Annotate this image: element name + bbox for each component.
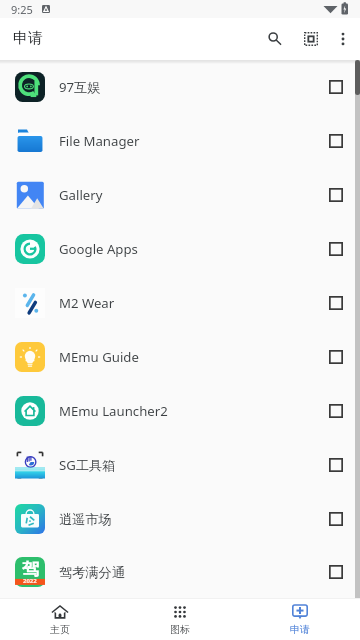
button[interactable]: 图标	[120, 599, 240, 640]
button[interactable]: Select MEmu Guide	[325, 346, 347, 368]
button[interactable]: Select all	[292, 22, 326, 56]
staticText: 申请	[13, 29, 43, 48]
staticText: 驾	[22, 559, 39, 580]
button[interactable]: Google Apps	[0, 222, 360, 276]
button[interactable]: Gallery	[0, 168, 360, 222]
staticText: 驾考满分通	[59, 564, 325, 581]
button[interactable]: SG工具箱	[0, 438, 360, 492]
button[interactable]: Select Google Apps	[325, 238, 347, 260]
button[interactable]: More options	[326, 22, 360, 56]
staticText: 97互娱	[59, 78, 325, 96]
staticText: 2022	[23, 577, 37, 585]
staticText: 逍遥市场	[59, 511, 325, 528]
button[interactable]: M2 Wear	[0, 276, 360, 330]
staticText: MEmu Launcher2	[59, 402, 325, 420]
button[interactable]: Select 97互娱	[325, 76, 347, 98]
staticText: Google Apps	[59, 240, 325, 258]
button[interactable]: 97互娱	[0, 60, 360, 114]
staticText: 图标	[170, 623, 190, 636]
button[interactable]: Select 驾考满分通	[325, 561, 347, 583]
button[interactable]: Select MEmu Launcher2	[325, 400, 347, 422]
button[interactable]: Select M2 Wear	[325, 292, 347, 314]
staticText: SG工具箱	[59, 456, 325, 474]
button[interactable]: 主页	[0, 599, 120, 640]
button[interactable]: Select Gallery	[325, 184, 347, 206]
staticText: MEmu Guide	[59, 348, 325, 366]
button[interactable]: 申请	[240, 599, 360, 640]
button[interactable]: MEmu Launcher2	[0, 384, 360, 438]
button[interactable]: MEmu Guide	[0, 330, 360, 384]
button[interactable]: Select 逍遥市场	[325, 508, 347, 530]
staticText: 9:25	[11, 2, 33, 17]
button[interactable]: 逍遥市场	[0, 492, 360, 546]
staticText: 申请	[290, 623, 310, 636]
button[interactable]: File Manager	[0, 114, 360, 168]
button[interactable]: 驾	[0, 546, 360, 598]
staticText: 主页	[50, 623, 70, 636]
button[interactable]: Search	[258, 22, 292, 56]
staticText: M2 Wear	[59, 294, 325, 312]
button[interactable]: Select SG工具箱	[325, 454, 347, 476]
button[interactable]: Select File Manager	[325, 130, 347, 152]
staticText: File Manager	[59, 132, 325, 150]
staticText: Gallery	[59, 186, 325, 204]
